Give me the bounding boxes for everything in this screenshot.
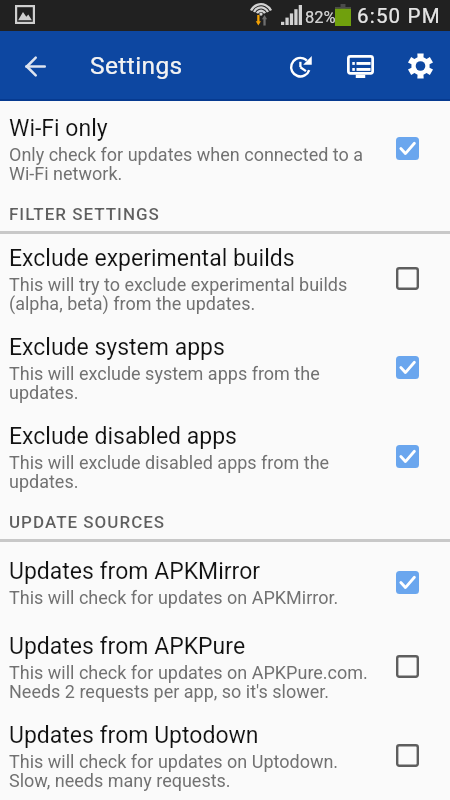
staticText: This will exclude system apps from the u… <box>9 365 374 403</box>
staticText: This will exclude disabled apps from the… <box>9 454 374 492</box>
staticText: Updates from APKMirror <box>9 558 261 585</box>
staticText: Updates from Uptodown <box>9 722 259 749</box>
staticText: Settings <box>90 51 183 80</box>
staticText: Updates from APKPure <box>9 633 246 660</box>
staticText: This will check for updates on APKPure.c… <box>9 664 374 702</box>
button[interactable]: Updates from APKMirror <box>0 542 450 622</box>
button[interactable]: Logs <box>330 31 390 101</box>
button[interactable]: Settings <box>390 31 450 101</box>
button[interactable]: Navigate up <box>0 31 70 101</box>
staticText: This will try to exclude experimental bu… <box>9 276 374 314</box>
staticText: This will check for updates on Uptodown.… <box>9 753 374 791</box>
button[interactable]: Wi-Fi only <box>0 104 450 193</box>
button[interactable]: Update history <box>270 31 330 101</box>
staticText: UPDATE SOURCES <box>9 512 166 532</box>
staticText: Exclude experimental builds <box>9 245 295 272</box>
button[interactable]: Exclude experimental builds <box>0 234 450 323</box>
staticText: 6:50 PM <box>357 4 441 28</box>
staticText: This will check for updates on APKMirror… <box>9 589 339 608</box>
staticText: Wi-Fi only <box>9 115 108 142</box>
button[interactable]: Exclude disabled apps <box>0 412 450 501</box>
staticText: 82% <box>305 8 336 27</box>
button[interactable]: Updates from APKPure <box>0 622 450 711</box>
button[interactable]: Exclude system apps <box>0 323 450 412</box>
staticText: Exclude system apps <box>9 334 225 361</box>
other: Screenshot captured <box>15 5 35 24</box>
staticText: FILTER SETTINGS <box>9 204 160 224</box>
staticText: Only check for updates when connected to… <box>9 146 374 184</box>
staticText: Exclude disabled apps <box>9 423 237 450</box>
button[interactable]: Updates from Uptodown <box>0 711 450 800</box>
